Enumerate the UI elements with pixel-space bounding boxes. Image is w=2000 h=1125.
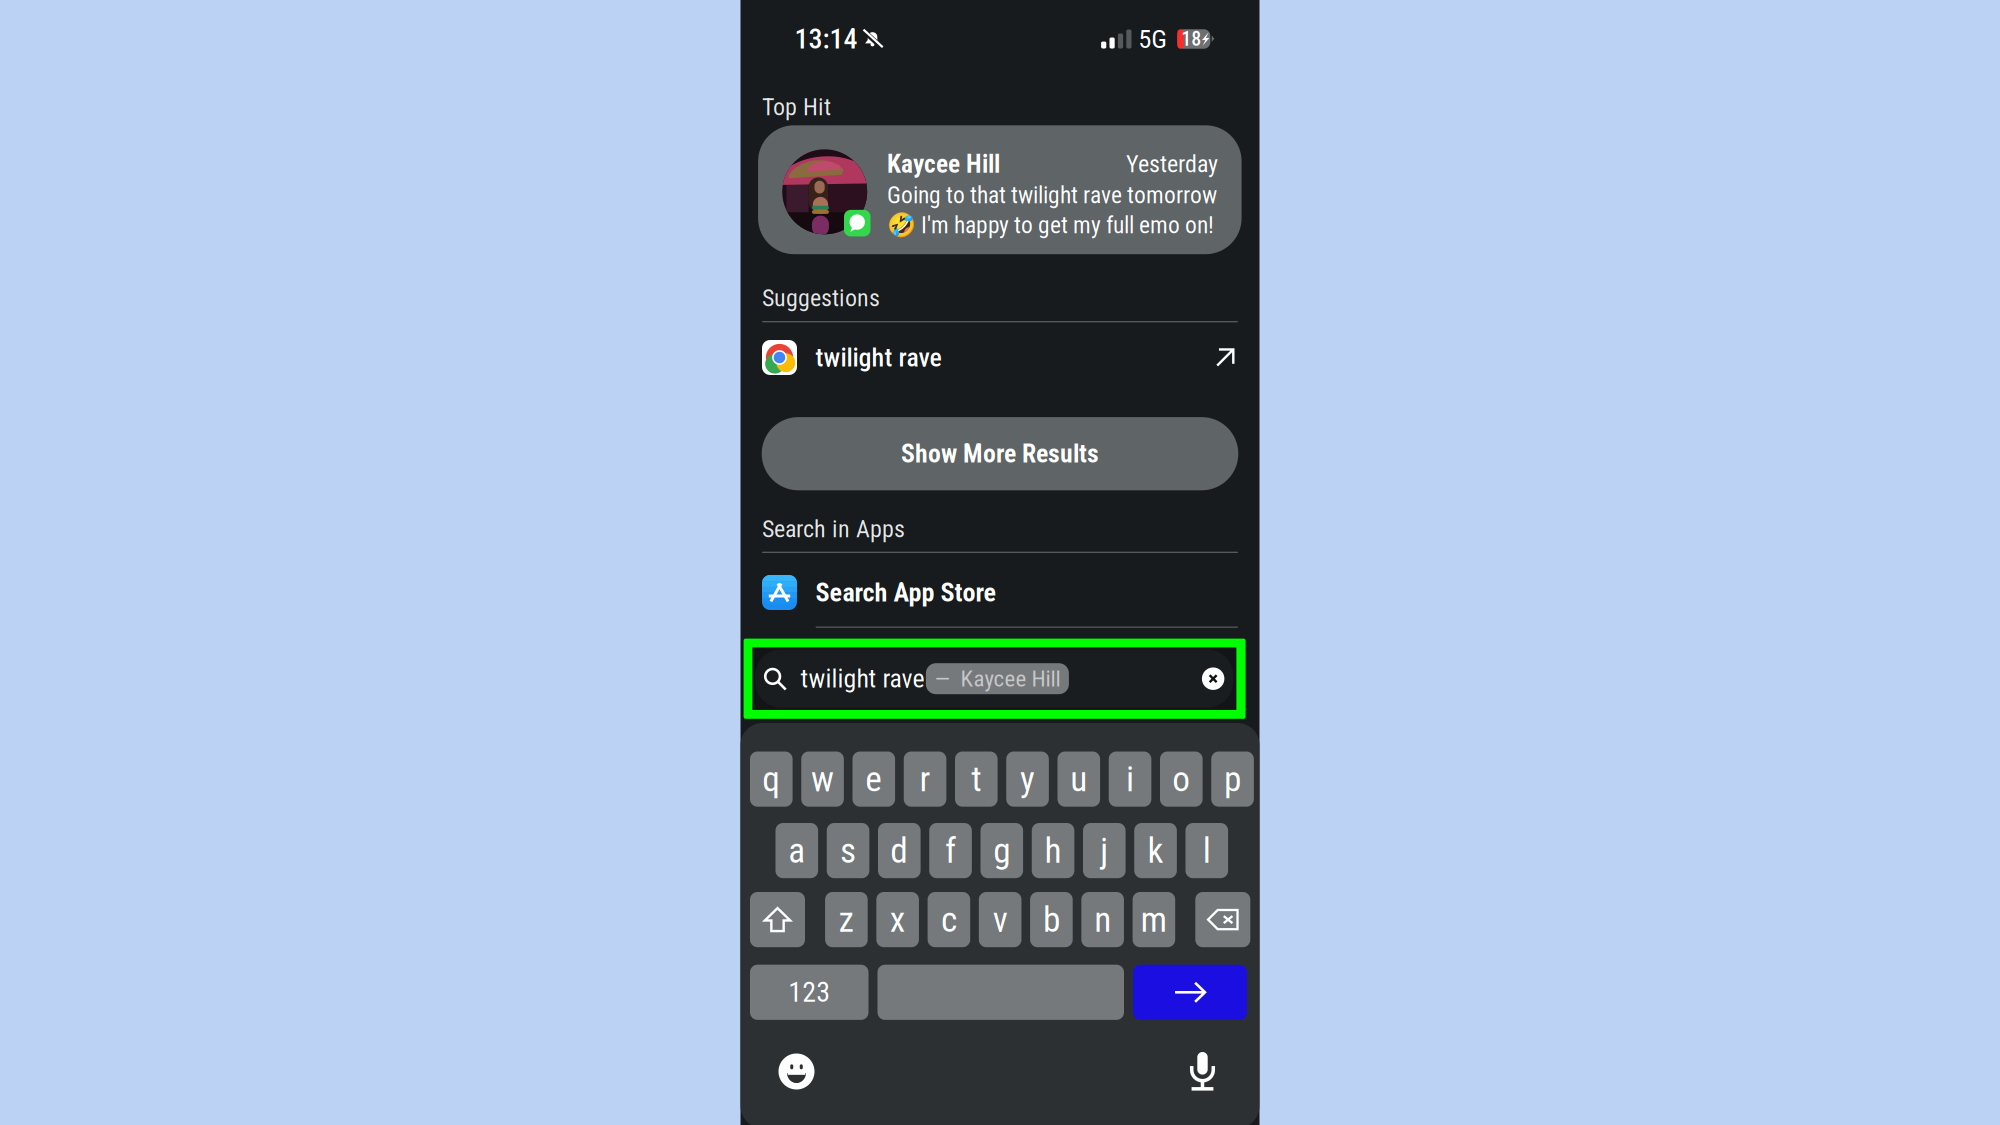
staticText: c	[941, 899, 957, 940]
button[interactable]: Kaycee Hill	[758, 125, 1242, 254]
button[interactable]: s	[827, 823, 869, 878]
button[interactable]: v	[979, 892, 1021, 947]
button[interactable]: Return	[1133, 965, 1247, 1020]
staticText: 123	[788, 976, 830, 1009]
staticText: Search App Store	[815, 577, 996, 608]
staticText: d	[890, 830, 908, 871]
button[interactable]: r	[904, 751, 946, 807]
button[interactable]: b	[1030, 892, 1073, 947]
staticText: Going to that twilight rave tomorrow	[887, 181, 1217, 209]
button[interactable]: Delete	[1195, 892, 1250, 947]
staticText: g	[993, 830, 1010, 871]
button[interactable]: f	[929, 823, 972, 878]
button[interactable]: Space	[877, 965, 1124, 1020]
button[interactable]: x	[876, 892, 919, 947]
staticText: a	[788, 830, 805, 871]
button[interactable]: c	[928, 892, 970, 947]
staticText: s	[840, 830, 856, 871]
staticText: l	[1203, 830, 1211, 871]
button[interactable]: Emoji keyboard	[778, 1053, 814, 1089]
staticText: 🤣 I'm happy to get my full emo on!	[887, 211, 1214, 239]
staticText: z	[838, 899, 854, 940]
button[interactable]: u	[1057, 751, 1100, 807]
button[interactable]: a	[775, 823, 818, 878]
button[interactable]: twilight rave	[762, 339, 1238, 376]
button[interactable]: j	[1083, 823, 1126, 878]
button[interactable]: q	[750, 751, 793, 807]
staticText: w	[811, 758, 834, 800]
staticText: q	[762, 758, 780, 800]
staticText: twilight rave	[815, 342, 941, 373]
button[interactable]: z	[825, 892, 868, 947]
staticText: r	[919, 758, 930, 800]
staticText: — Kaycee Hill	[934, 665, 1060, 692]
button[interactable]: t	[955, 751, 998, 807]
button[interactable]: w	[801, 751, 844, 807]
button[interactable]: p	[1211, 751, 1254, 807]
button[interactable]: e	[852, 751, 895, 807]
staticText: i	[1126, 758, 1134, 800]
button[interactable]: n	[1081, 892, 1124, 947]
staticText: Suggestions	[762, 284, 880, 312]
button[interactable]: y	[1006, 751, 1049, 807]
staticText: 13:14	[794, 23, 857, 55]
staticText: y	[1020, 758, 1035, 800]
button[interactable]: 123	[750, 965, 868, 1020]
staticText: j	[1100, 830, 1108, 871]
button[interactable]: d	[878, 823, 921, 878]
staticText: n	[1094, 899, 1111, 940]
button[interactable]: Dictation	[1189, 1052, 1215, 1091]
staticText: t	[971, 758, 981, 800]
staticText: 18	[1181, 27, 1201, 51]
staticText: k	[1147, 830, 1163, 871]
button[interactable]: twilight rave	[744, 639, 1246, 719]
button[interactable]: o	[1160, 751, 1203, 807]
button[interactable]: m	[1133, 892, 1175, 947]
staticText: h	[1044, 830, 1061, 871]
staticText: b	[1043, 899, 1060, 940]
button[interactable]: g	[980, 823, 1023, 878]
button[interactable]: Show More Results	[762, 417, 1238, 490]
staticText: v	[993, 899, 1008, 940]
staticText: p	[1224, 758, 1241, 800]
staticText: x	[890, 899, 906, 940]
button[interactable]: i	[1109, 751, 1151, 807]
button[interactable]: Shift	[750, 892, 805, 947]
staticText: e	[865, 758, 882, 800]
staticText: Top Hit	[762, 93, 831, 121]
staticText: 5G	[1138, 23, 1167, 55]
staticText: Show More Results	[901, 439, 1099, 469]
button[interactable]: Search App Store	[762, 574, 1238, 611]
staticText: u	[1070, 758, 1087, 800]
staticText: Search in Apps	[762, 515, 905, 543]
staticText: Yesterday	[1126, 150, 1218, 178]
staticText: m	[1140, 899, 1167, 940]
staticText: twilight rave	[800, 663, 924, 694]
button[interactable]: k	[1134, 823, 1177, 878]
staticText: f	[945, 830, 956, 871]
button[interactable]: l	[1185, 823, 1228, 878]
staticText: o	[1172, 758, 1190, 800]
button[interactable]: h	[1032, 823, 1074, 878]
staticText: Kaycee Hill	[887, 149, 1000, 179]
